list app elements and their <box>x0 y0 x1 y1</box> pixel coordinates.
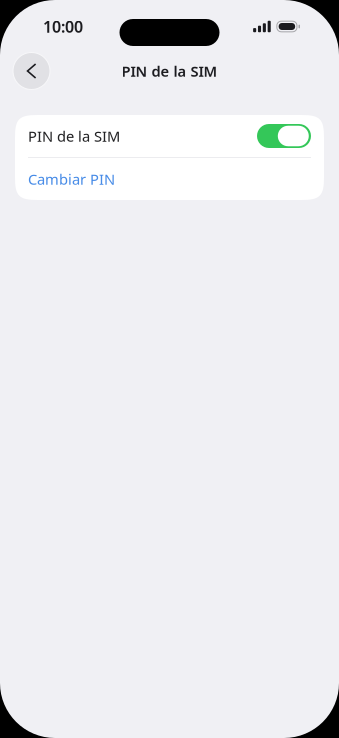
staticText: PIN de la SIM <box>28 126 120 146</box>
button[interactable]: Cambiar PIN <box>15 158 324 200</box>
staticText: 10:00 <box>43 16 83 37</box>
staticText: Cambiar PIN <box>28 169 115 189</box>
staticText: PIN de la SIM <box>121 61 217 81</box>
button[interactable]: Back <box>13 52 50 89</box>
button[interactable]: PIN de la SIM <box>15 115 324 157</box>
